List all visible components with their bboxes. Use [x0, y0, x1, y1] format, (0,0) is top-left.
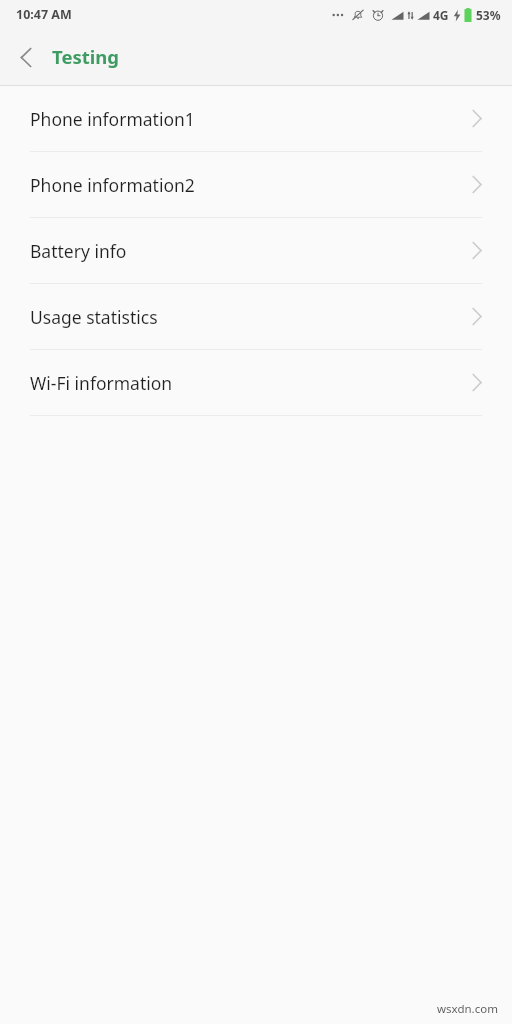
- button[interactable]: Phone information1: [0, 86, 512, 152]
- staticText: Phone information1: [30, 107, 195, 131]
- staticText: 4G: [433, 7, 449, 23]
- staticText: Testing: [52, 44, 119, 69]
- staticText: Phone information2: [30, 173, 195, 197]
- staticText: Battery info: [30, 239, 127, 263]
- button[interactable]: Usage statistics: [0, 284, 512, 350]
- button[interactable]: Phone information2: [0, 152, 512, 218]
- staticText: wsxdn.com: [437, 1001, 498, 1017]
- staticText: Usage statistics: [30, 305, 158, 329]
- button[interactable]: Wi-Fi information: [0, 350, 512, 416]
- staticText: 10:47 AM: [16, 6, 72, 23]
- staticText: 53%: [476, 7, 501, 23]
- staticText: Wi-Fi information: [30, 371, 173, 395]
- button[interactable]: Back: [8, 39, 44, 75]
- button[interactable]: Battery info: [0, 218, 512, 284]
